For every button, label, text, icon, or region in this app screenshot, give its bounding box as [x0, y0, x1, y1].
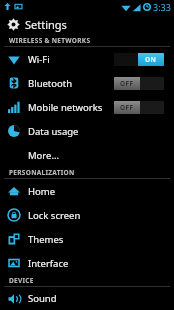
- staticText: Sound: [28, 292, 57, 305]
- button[interactable]: Lock screen: [0, 203, 174, 227]
- button[interactable]: Sound: [0, 287, 174, 310]
- other: Mobile networks: [8, 101, 20, 113]
- staticText: Home: [28, 185, 56, 198]
- button[interactable]: Wi-Fi: [0, 47, 174, 71]
- button[interactable]: Off: [114, 77, 164, 90]
- staticText: Mobile networks: [28, 101, 103, 114]
- other: Home: [8, 185, 20, 197]
- button[interactable]: On: [114, 53, 164, 66]
- other: Lock screen: [8, 209, 20, 221]
- button[interactable]: Bluetooth: [0, 71, 174, 95]
- staticText: 3:33: [153, 1, 171, 13]
- other: Bluetooth: [8, 77, 20, 89]
- other: Themes: [8, 233, 20, 245]
- staticText: Settings: [25, 17, 67, 32]
- staticText: OFF: [120, 79, 134, 88]
- button[interactable]: Off: [114, 101, 164, 114]
- staticText: Lock screen: [28, 209, 81, 222]
- button[interactable]: Interface: [0, 251, 174, 275]
- staticText: PERSONALIZATION: [9, 168, 75, 177]
- other: Wi-Fi: [8, 53, 20, 65]
- staticText: Bluetooth: [28, 77, 73, 90]
- button[interactable]: Settings: [0, 13, 174, 35]
- button[interactable]: Mobile networks: [0, 95, 174, 119]
- staticText: Data usage: [28, 125, 79, 138]
- staticText: ON: [145, 55, 157, 64]
- button[interactable]: Themes: [0, 227, 174, 251]
- other: Interface: [8, 257, 20, 269]
- button[interactable]: More...: [0, 143, 174, 167]
- staticText: Interface: [28, 257, 69, 270]
- button[interactable]: Data usage: [0, 119, 174, 143]
- other: Data usage: [8, 125, 20, 137]
- staticText: More...: [28, 149, 60, 162]
- staticText: DEVICE: [9, 276, 34, 285]
- staticText: Wi-Fi: [28, 53, 50, 66]
- staticText: Themes: [28, 233, 64, 246]
- button[interactable]: Home: [0, 179, 174, 203]
- staticText: OFF: [120, 103, 134, 112]
- other: Sound: [8, 293, 20, 305]
- staticText: WIRELESS & NETWORKS: [9, 36, 91, 45]
